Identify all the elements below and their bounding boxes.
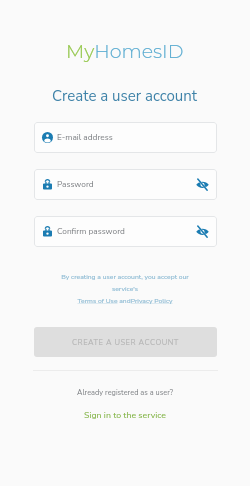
button[interactable]: Sign in to the service [84,409,166,421]
button[interactable]: CREATE A USER ACCOUNT [34,327,217,357]
staticText: Already registered as a user? [77,388,174,398]
button[interactable]: By creating a user account, you accept o… [61,272,189,305]
staticText: E-mail address [57,132,113,143]
staticText: Confirm password [57,226,125,237]
staticText: CREATE A USER ACCOUNT [72,337,179,347]
button[interactable]: Confirm password [34,216,217,247]
staticText: Password [57,179,94,190]
button[interactable]: Show password [196,178,209,191]
button[interactable]: Show password [196,225,209,238]
button[interactable]: Password [34,169,217,200]
button[interactable]: E-mail address [34,122,217,153]
staticText: MyHomesID [66,40,184,63]
staticText: Create a user account [52,86,198,106]
